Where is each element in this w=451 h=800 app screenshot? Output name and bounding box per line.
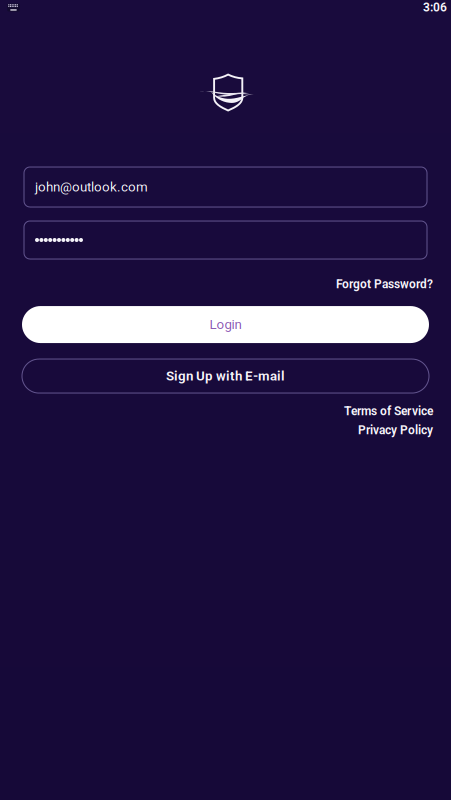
button[interactable]: Privacy Policy xyxy=(0,423,451,437)
staticText: Privacy Policy xyxy=(358,423,433,437)
staticText: Sign Up with E-mail xyxy=(166,368,285,384)
staticText: 3:06 xyxy=(423,0,447,15)
staticText: Login xyxy=(209,317,241,332)
button[interactable]: Sign Up with E-mail xyxy=(0,359,451,393)
button[interactable]: Terms of Service xyxy=(0,404,451,418)
staticText: Terms of Service xyxy=(344,404,433,418)
button[interactable]: Login xyxy=(0,306,451,343)
button[interactable]: Forgot Password? xyxy=(0,277,451,291)
staticText: Forgot Password? xyxy=(336,277,433,291)
staticText: john@outlook.com xyxy=(35,179,148,195)
